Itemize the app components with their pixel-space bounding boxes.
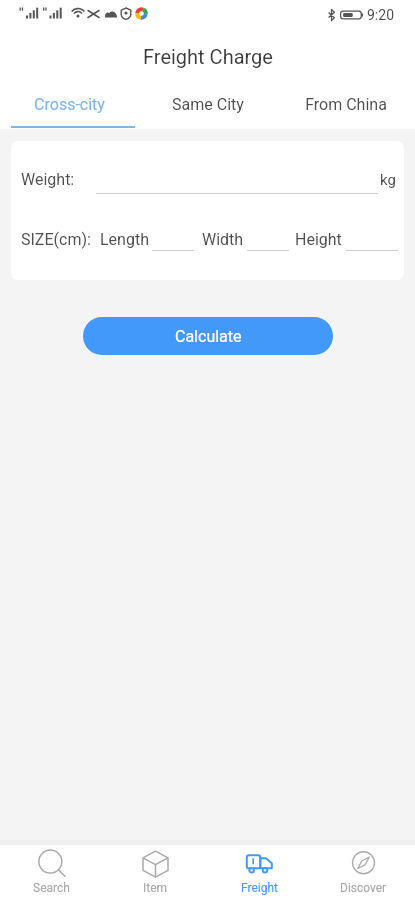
staticText: Discover — [340, 881, 387, 895]
staticText: Item — [143, 881, 168, 895]
staticText: Freight Charge — [143, 45, 273, 68]
other: Discover — [349, 850, 378, 879]
staticText: SIZE(cm): — [21, 230, 91, 249]
button[interactable]: Discover — [311, 845, 415, 900]
button[interactable]: Calculate — [83, 317, 333, 355]
button[interactable]: Freight — [207, 845, 311, 900]
staticText: Length — [100, 230, 149, 249]
staticText: Height — [295, 230, 342, 249]
staticText: Weight: — [21, 170, 75, 189]
staticText: Width — [202, 230, 244, 249]
staticText: 9:20 — [367, 7, 394, 23]
staticText: kg — [380, 171, 396, 189]
other: Search — [37, 850, 66, 879]
button[interactable]: From China — [277, 83, 415, 129]
staticText: Same City — [172, 95, 244, 114]
button[interactable]: Same City — [139, 83, 277, 129]
staticText: Search — [33, 881, 70, 895]
staticText: From China — [305, 95, 387, 114]
other: Freight — [245, 850, 274, 879]
other: Item — [141, 850, 170, 879]
staticText: Calculate — [175, 327, 242, 346]
staticText: Cross-city — [34, 95, 105, 114]
button[interactable]: Search — [0, 845, 103, 900]
button[interactable]: Cross-city — [0, 83, 139, 129]
button[interactable]: Item — [103, 845, 207, 900]
staticText: Freight — [241, 881, 278, 895]
